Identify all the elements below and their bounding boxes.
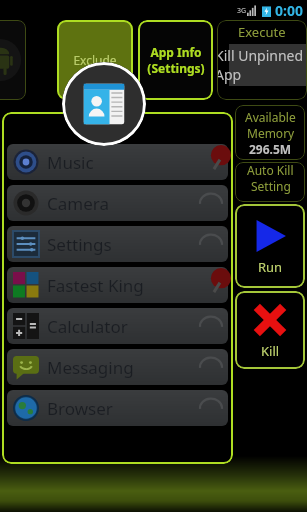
button[interactable]: Camera xyxy=(7,185,228,221)
staticText: (Settings) xyxy=(147,60,205,76)
button[interactable]: Messaging xyxy=(7,349,228,385)
button[interactable]: Exclude xyxy=(57,20,133,100)
staticText: App Info xyxy=(150,44,202,60)
staticText: Execute xyxy=(238,23,286,41)
staticText: Browser xyxy=(47,397,113,420)
staticText: Fastest King xyxy=(47,274,144,297)
button[interactable]: Browser xyxy=(7,390,228,426)
staticText: Auto Kill xyxy=(247,162,294,178)
button[interactable]: Music xyxy=(7,144,228,180)
staticText: 0:00 xyxy=(275,1,303,20)
button[interactable]: Kill Unpinned App xyxy=(229,44,307,86)
staticText: Setting xyxy=(251,178,291,194)
staticText: Available xyxy=(245,109,296,125)
button[interactable]: Auto Kill xyxy=(235,162,305,202)
button[interactable]: Kill xyxy=(235,291,305,369)
staticText: Run xyxy=(258,258,283,276)
button[interactable]: Settings xyxy=(7,226,228,262)
staticText: Memory xyxy=(247,125,295,141)
staticText: Music xyxy=(47,151,94,174)
staticText: Kill Unpinned App xyxy=(217,46,305,84)
button[interactable]: Fastest King xyxy=(7,267,228,303)
button[interactable]: Calculator xyxy=(7,308,228,344)
staticText: Messaging xyxy=(47,356,134,379)
staticText: Camera xyxy=(47,192,109,215)
button[interactable]: App Info xyxy=(138,20,213,100)
staticText: Kill xyxy=(261,342,280,360)
staticText: Settings xyxy=(47,233,112,256)
staticText: 3G xyxy=(237,6,247,16)
staticText: Exclude xyxy=(73,52,117,68)
button[interactable]: Run xyxy=(235,204,305,288)
button[interactable]: Include xyxy=(0,20,26,100)
staticText: Calculator xyxy=(47,315,128,338)
staticText: 296.5M xyxy=(249,141,292,157)
